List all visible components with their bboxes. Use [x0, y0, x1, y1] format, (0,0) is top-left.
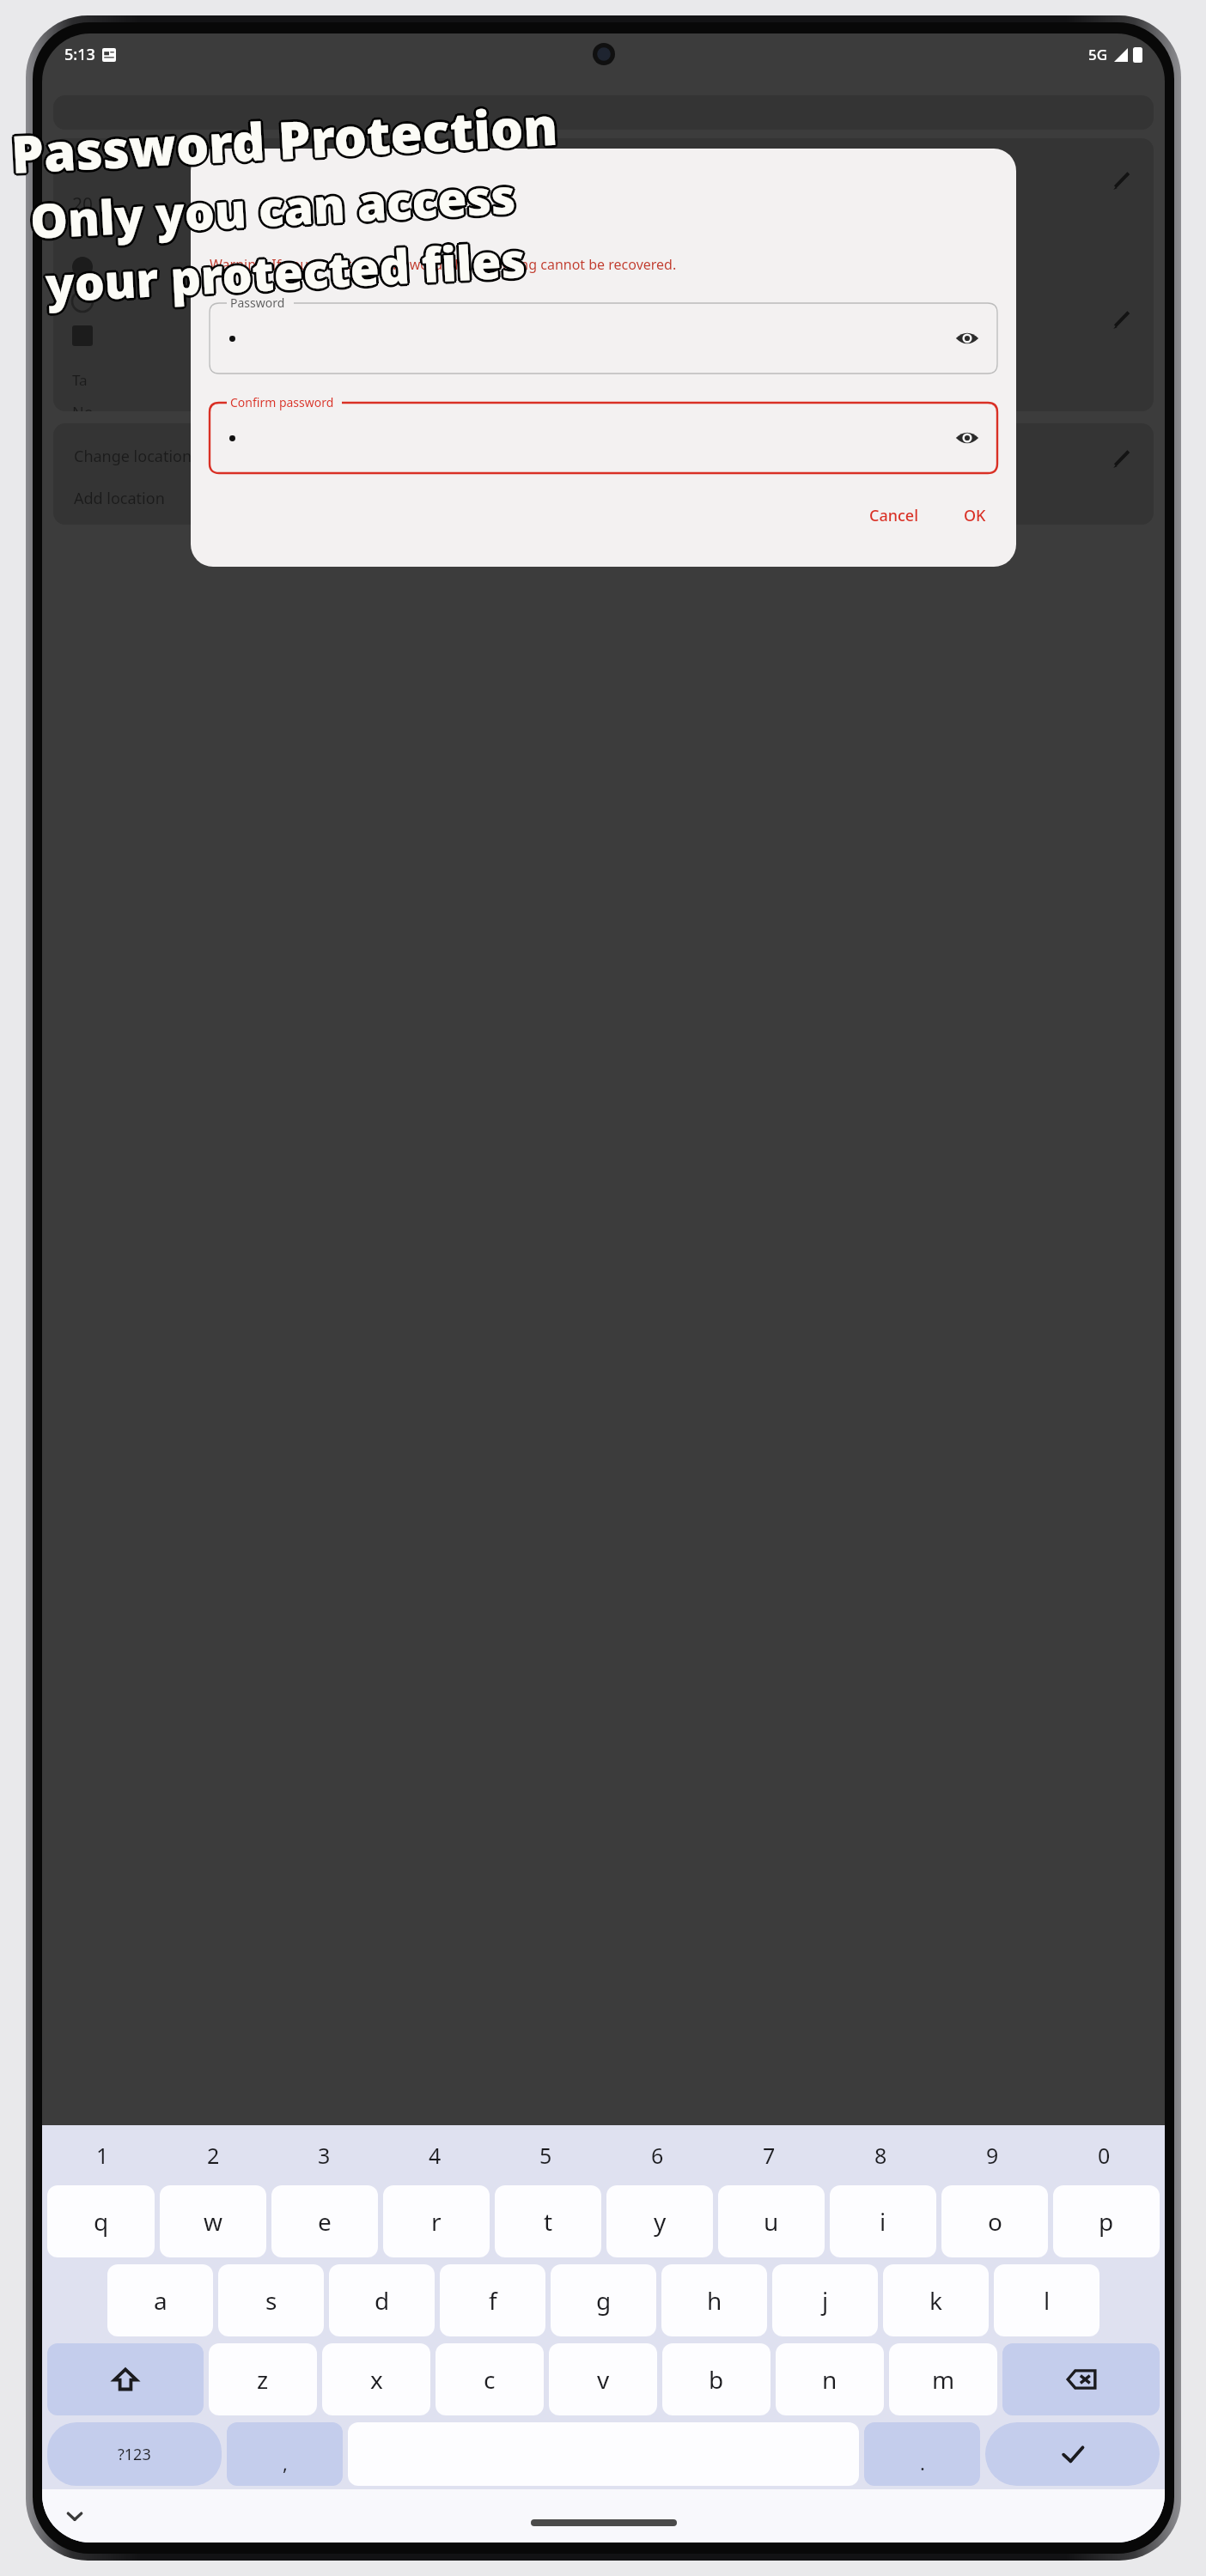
staticText: j [822, 2284, 829, 2317]
staticText: Change location [74, 446, 192, 467]
button[interactable]: 8 [825, 2129, 936, 2182]
button[interactable]: Enter [985, 2422, 1160, 2486]
staticText: v [597, 2363, 610, 2396]
button[interactable]: y [606, 2185, 713, 2257]
button[interactable]: . [864, 2422, 980, 2486]
staticText: 5 [539, 2141, 552, 2170]
button[interactable]: e [271, 2185, 378, 2257]
staticText: your protected files [43, 228, 527, 318]
staticText: Cancel [869, 505, 919, 526]
button[interactable]: 4 [380, 2129, 490, 2182]
button[interactable]: j [772, 2264, 878, 2336]
staticText: your protected files [45, 225, 529, 314]
staticText: Only you can access [30, 161, 519, 251]
button[interactable]: l [994, 2264, 1099, 2336]
staticText: Password Protection [9, 90, 559, 189]
button[interactable]: Cancel [858, 497, 930, 534]
staticText: y [654, 2205, 667, 2238]
staticText: Only you can access [27, 164, 516, 254]
staticText: Only you can access [30, 164, 519, 254]
button[interactable]: o [941, 2185, 1048, 2257]
button[interactable]: 2 [158, 2129, 269, 2182]
button[interactable]: OK [953, 497, 997, 534]
button[interactable]: f [440, 2264, 545, 2336]
staticText: your protected files [42, 228, 526, 318]
button[interactable]: x [322, 2343, 430, 2415]
staticText: Only you can access [29, 164, 518, 254]
staticText: z [257, 2363, 269, 2396]
button[interactable]: 1 [47, 2129, 158, 2182]
button[interactable]: r [383, 2185, 490, 2257]
staticText: your protected files [44, 227, 528, 316]
staticText: Confirm password [230, 394, 334, 410]
button[interactable]: ?123 [47, 2422, 222, 2486]
staticText: 7 [763, 2141, 776, 2170]
staticText: m [932, 2363, 955, 2396]
staticText: Warning: If you forget the password, the… [210, 255, 677, 274]
staticText: Password Protection [10, 88, 560, 187]
staticText: Password Protection [9, 92, 559, 191]
button[interactable]: Edit [1107, 307, 1135, 334]
button[interactable]: 7 [713, 2129, 825, 2182]
staticText: t [544, 2205, 553, 2238]
staticText: Na [72, 154, 93, 175]
button[interactable]: b [662, 2343, 770, 2415]
staticText: 3 [318, 2141, 331, 2170]
staticText: your protected files [44, 229, 528, 319]
staticText: u [764, 2205, 779, 2238]
button[interactable]: 0 [1048, 2129, 1160, 2182]
button[interactable]: s [218, 2264, 324, 2336]
staticText: , [283, 2450, 288, 2476]
button[interactable]: Shift [47, 2343, 204, 2415]
staticText: p [1099, 2205, 1114, 2238]
button[interactable]: u [718, 2185, 825, 2257]
staticText: 5G [1088, 45, 1108, 64]
button[interactable]: Edit [1107, 167, 1135, 195]
staticText: g [596, 2284, 612, 2317]
button[interactable]: w [160, 2185, 266, 2257]
staticText: 1 [96, 2141, 109, 2170]
button[interactable]: Backspace [1002, 2343, 1160, 2415]
staticText: Only you can access [28, 160, 517, 250]
button[interactable]: 5 [490, 2129, 601, 2182]
button[interactable]: Show password [947, 418, 987, 458]
staticText: Password Protection [8, 91, 558, 190]
staticText: Password Protection [11, 91, 561, 190]
staticText: Only you can access [30, 162, 519, 251]
button[interactable]: p [1053, 2185, 1160, 2257]
button[interactable]: 3 [269, 2129, 380, 2182]
staticText: Password Protection [11, 88, 561, 187]
button[interactable]: h [661, 2264, 767, 2336]
staticText: No [72, 402, 94, 411]
staticText: a [154, 2284, 167, 2317]
staticText: your protected files [46, 227, 529, 317]
button[interactable]: Edit [1107, 446, 1135, 473]
staticText: your protected files [42, 225, 526, 314]
button[interactable]: i [830, 2185, 936, 2257]
button[interactable]: n [776, 2343, 884, 2415]
staticText: Only you can access [28, 163, 517, 252]
staticText: Password Protection [10, 92, 560, 191]
button[interactable]: v [549, 2343, 657, 2415]
button[interactable]: Space [348, 2422, 859, 2486]
button[interactable]: m [889, 2343, 997, 2415]
button[interactable]: 9 [936, 2129, 1048, 2182]
button[interactable]: 6 [601, 2129, 713, 2182]
button[interactable]: q [47, 2185, 155, 2257]
button[interactable]: , [227, 2422, 343, 2486]
staticText: your protected files [41, 227, 525, 316]
button[interactable]: k [883, 2264, 989, 2336]
button[interactable]: Show password [947, 319, 987, 358]
staticText: Password Protection [8, 88, 559, 187]
button[interactable]: a [107, 2264, 213, 2336]
button[interactable]: d [329, 2264, 435, 2336]
button[interactable]: c [435, 2343, 544, 2415]
staticText: i [880, 2205, 886, 2238]
staticText: Only you can access [29, 161, 518, 251]
button[interactable]: g [551, 2264, 656, 2336]
button[interactable]: z [209, 2343, 317, 2415]
staticText: your protected files [46, 226, 529, 315]
staticText: Password Protection [9, 92, 560, 191]
staticText: Password Protection [8, 92, 558, 191]
button[interactable]: t [495, 2185, 601, 2257]
